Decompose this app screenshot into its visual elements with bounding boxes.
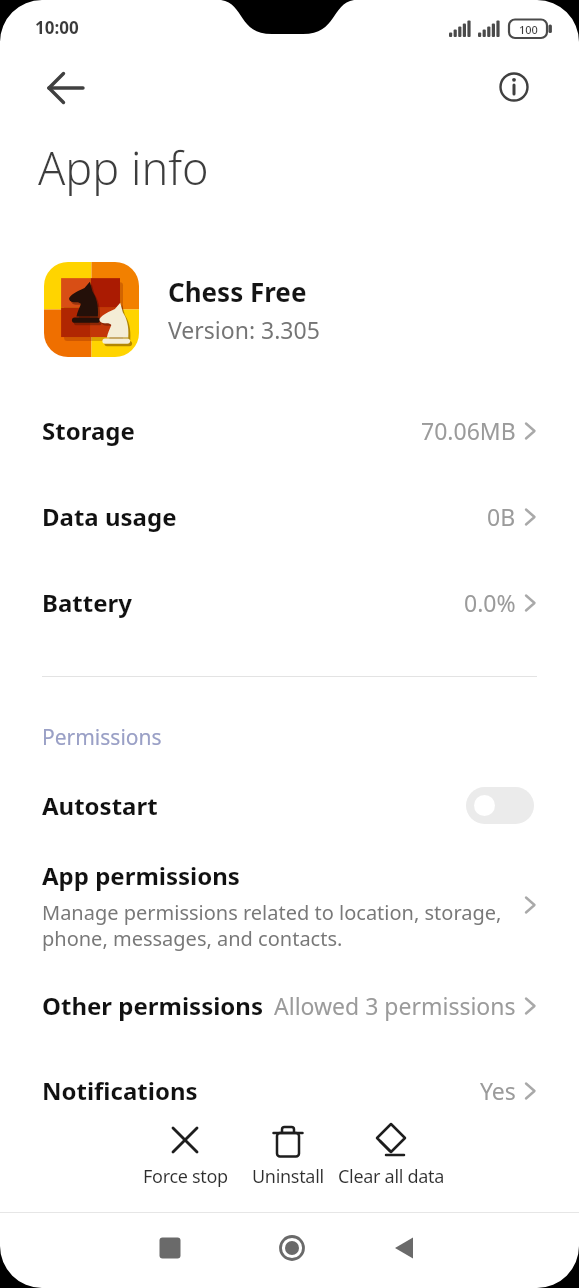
- staticText: Clear all data: [338, 1164, 445, 1189]
- button[interactable]: [488, 61, 540, 113]
- button[interactable]: Data usage: [0, 473, 579, 559]
- staticText: 100: [519, 22, 538, 37]
- staticText: 70.06MB: [421, 415, 516, 446]
- staticText: 10:00: [35, 16, 79, 39]
- staticText: Battery: [42, 586, 132, 619]
- button[interactable]: Uninstall: [213, 1122, 363, 1194]
- button[interactable]: Other permissions: [0, 962, 579, 1048]
- staticText: App info: [38, 137, 209, 198]
- staticText: Yes: [480, 1075, 516, 1106]
- button[interactable]: Storage: [0, 387, 579, 473]
- staticText: Manage permissions related to location, …: [42, 899, 502, 951]
- staticText: Notifications: [42, 1074, 198, 1107]
- button[interactable]: [380, 1223, 430, 1273]
- staticText: 0.0%: [464, 587, 516, 618]
- staticText: Force stop: [143, 1164, 228, 1189]
- button[interactable]: [38, 62, 90, 114]
- staticText: Uninstall: [252, 1164, 324, 1189]
- staticText: 0B: [487, 501, 516, 532]
- staticText: Permissions: [42, 723, 162, 752]
- staticText: Data usage: [42, 500, 177, 533]
- button[interactable]: [145, 1223, 195, 1273]
- staticText: Autostart: [42, 789, 158, 822]
- staticText: Version: 3.305: [168, 314, 320, 345]
- staticText: Chess Free: [168, 274, 307, 309]
- staticText: Allowed 3 permissions: [274, 990, 516, 1021]
- button[interactable]: Clear all data: [316, 1122, 466, 1194]
- button[interactable]: [267, 1223, 317, 1273]
- button[interactable]: Force stop: [110, 1122, 260, 1194]
- staticText: App permissions: [42, 859, 240, 892]
- button[interactable]: Notifications: [0, 1047, 579, 1133]
- button[interactable]: App permissions: [0, 850, 579, 960]
- staticText: Storage: [42, 414, 135, 447]
- button[interactable]: Battery: [0, 559, 579, 645]
- button[interactable]: Autostart: [0, 762, 579, 848]
- staticText: Other permissions: [42, 989, 264, 1022]
